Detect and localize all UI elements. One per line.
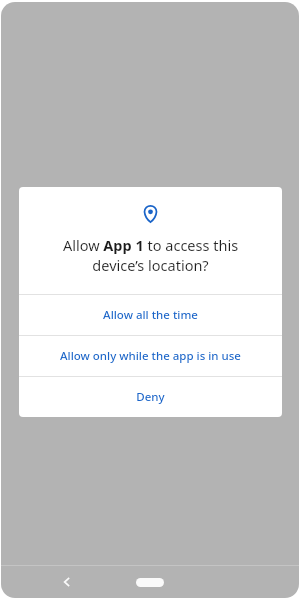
button[interactable]: Allow only while the app is in use (19, 336, 282, 376)
button[interactable]: Home (126, 570, 174, 594)
button[interactable]: Back (53, 568, 81, 596)
button[interactable]: Deny (19, 377, 282, 417)
staticText: Allow all the time (103, 307, 198, 323)
staticText: Allow only while the app is in use (60, 348, 241, 364)
staticText: Allow App 1 to access this device’s loca… (39, 235, 262, 276)
staticText: Deny (136, 389, 165, 405)
button[interactable]: Allow all the time (19, 295, 282, 335)
